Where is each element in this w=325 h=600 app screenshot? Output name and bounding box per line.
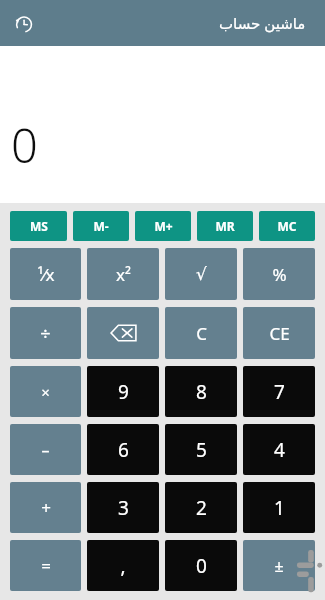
staticText: MS	[30, 218, 48, 234]
staticText: 3	[118, 495, 129, 521]
staticText: 1	[274, 495, 285, 521]
staticText: %	[272, 263, 287, 286]
button[interactable]: ×	[10, 366, 81, 417]
button[interactable]: √	[165, 248, 237, 300]
button[interactable]: 1	[243, 482, 315, 533]
button[interactable]: 2	[165, 482, 237, 533]
staticText: ÷	[40, 321, 51, 346]
staticText: M+	[154, 218, 173, 234]
staticText: +	[41, 496, 51, 519]
staticText: 8	[196, 379, 207, 405]
staticText: 5	[196, 437, 207, 463]
button[interactable]: 6	[87, 424, 159, 475]
button[interactable]: 7	[243, 366, 315, 417]
button[interactable]: –	[10, 424, 81, 475]
staticText: M-	[93, 218, 109, 234]
button[interactable]: C	[165, 307, 237, 359]
staticText: MC	[277, 218, 297, 234]
button[interactable]: 3	[87, 482, 159, 533]
button[interactable]: History	[7, 7, 39, 39]
staticText: 6	[118, 437, 129, 463]
button[interactable]: MS	[10, 211, 67, 241]
staticText: √	[196, 264, 207, 284]
button[interactable]: MR	[197, 211, 253, 241]
button[interactable]: 0	[165, 540, 237, 591]
staticText: C	[196, 322, 207, 345]
staticText: 2	[196, 495, 207, 521]
button[interactable]: %	[243, 248, 315, 300]
button[interactable]: x²	[87, 248, 159, 300]
button[interactable]: 9	[87, 366, 159, 417]
staticText: ¹⁄x	[37, 263, 55, 286]
staticText: =	[41, 554, 51, 577]
staticText: ±	[274, 555, 284, 577]
button[interactable]: ±	[243, 540, 315, 591]
staticText: 0	[11, 113, 38, 177]
staticText: ماشین حساب	[219, 13, 306, 33]
button[interactable]: MC	[259, 211, 315, 241]
button[interactable]: +	[10, 482, 81, 533]
button[interactable]: ÷	[10, 307, 81, 359]
staticText: ,	[120, 553, 126, 579]
staticText: MR	[215, 218, 235, 234]
button[interactable]: Backspace	[87, 307, 159, 359]
staticText: CE	[269, 322, 290, 345]
button[interactable]: CE	[243, 307, 315, 359]
staticText: 0	[196, 553, 207, 579]
button[interactable]: 8	[165, 366, 237, 417]
staticText: ×	[41, 382, 50, 402]
staticText: 9	[118, 379, 129, 405]
button[interactable]: ,	[87, 540, 159, 591]
staticText: 4	[274, 437, 285, 463]
button[interactable]: 5	[165, 424, 237, 475]
button[interactable]: M+	[135, 211, 191, 241]
button[interactable]: =	[10, 540, 81, 591]
staticText: 7	[274, 379, 285, 405]
staticText: x²	[116, 263, 131, 286]
staticText: –	[41, 439, 50, 461]
button[interactable]: ¹⁄x	[10, 248, 81, 300]
button[interactable]: M-	[73, 211, 129, 241]
button[interactable]: 4	[243, 424, 315, 475]
